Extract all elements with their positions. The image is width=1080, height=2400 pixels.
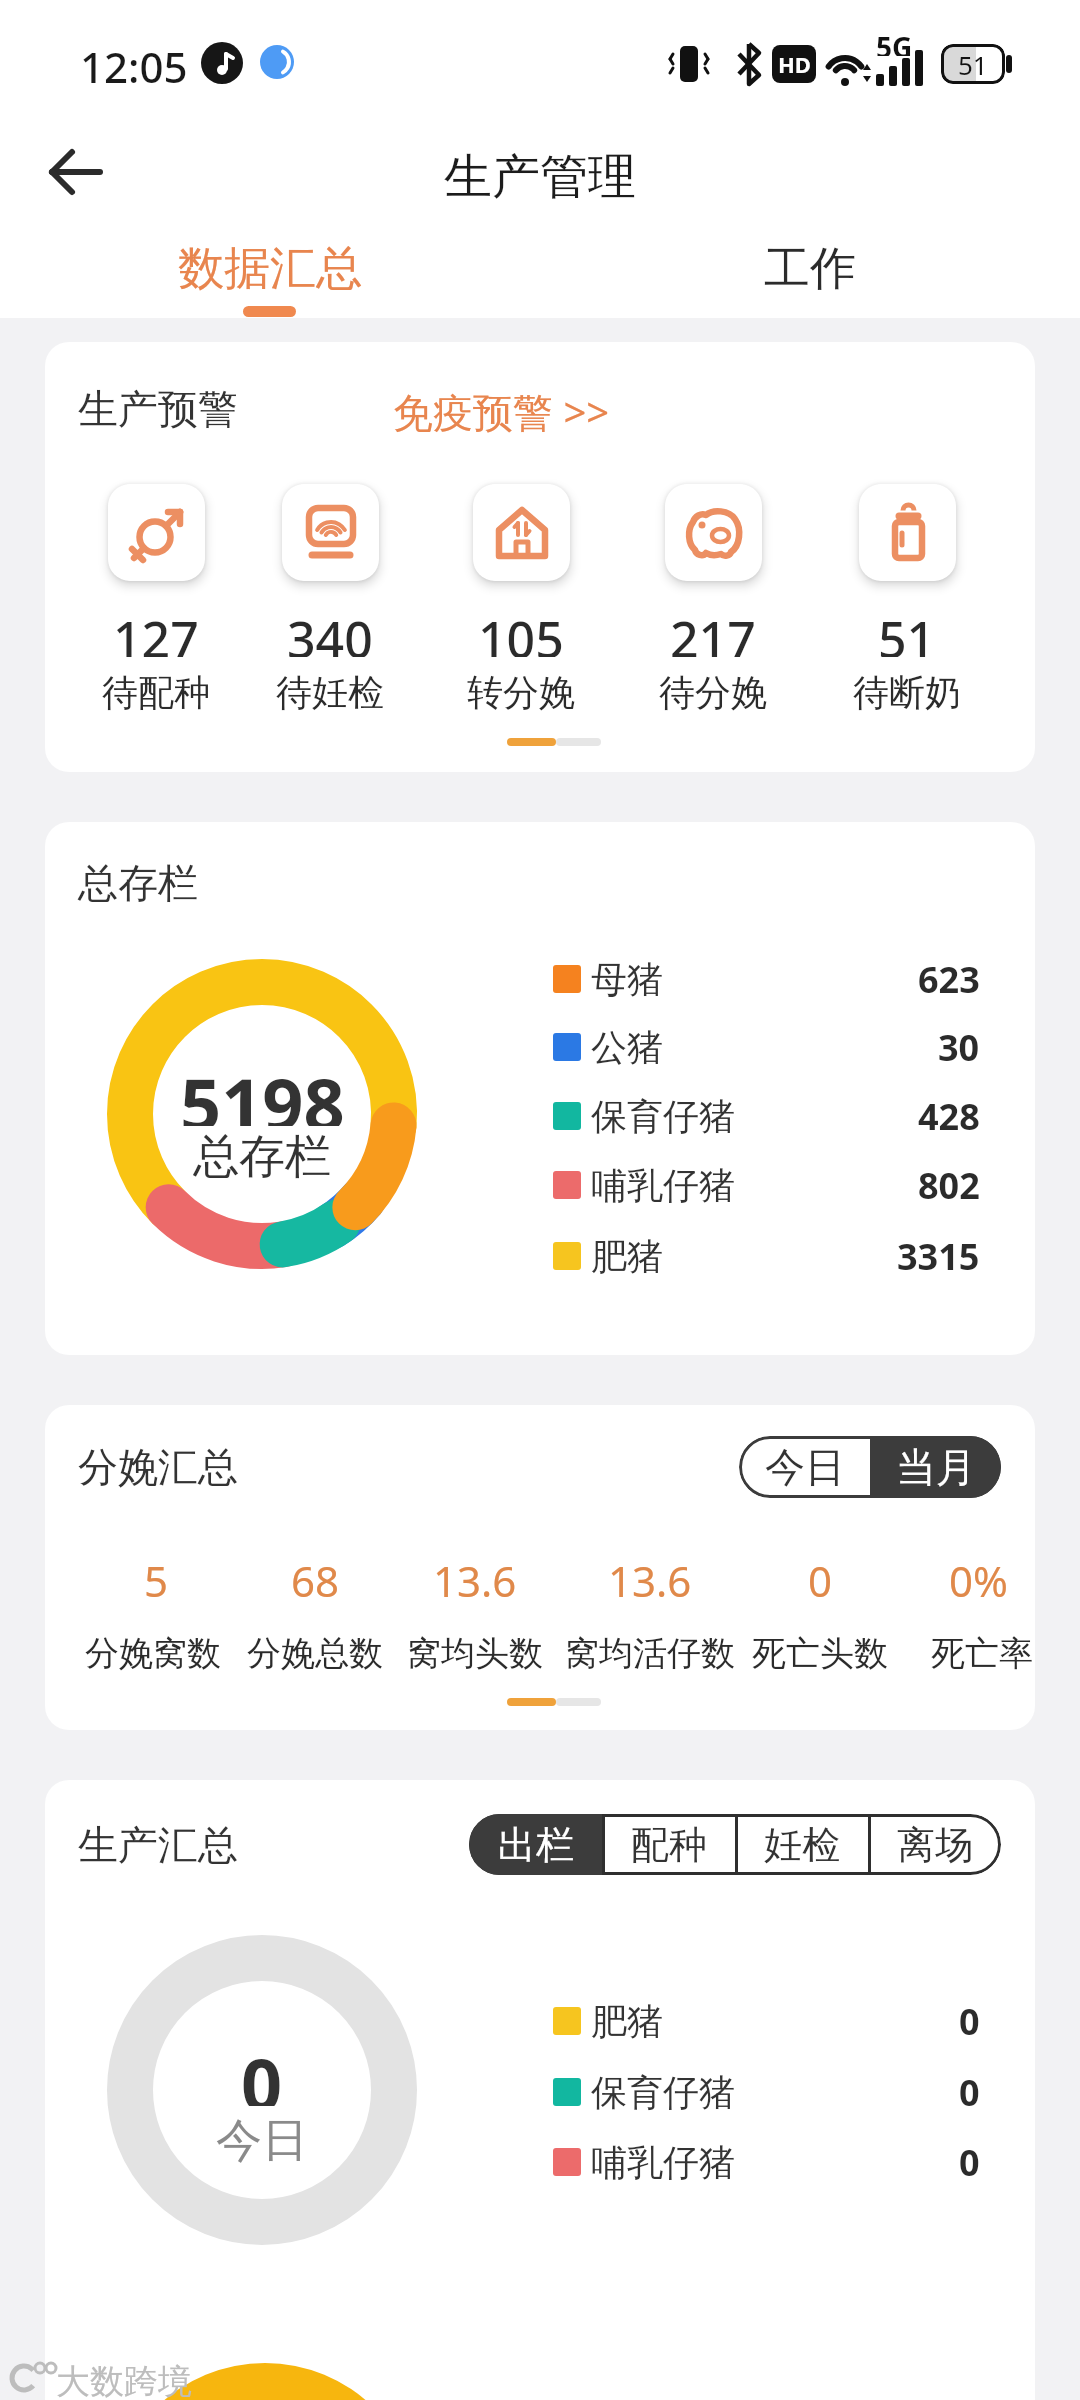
staticText: 妊检 [764,1821,840,1869]
staticText: 623 [918,955,980,1004]
staticText: 工作 [764,240,856,296]
staticText: 当月 [896,1442,976,1492]
staticText: 免疫预警 >> [393,384,610,434]
staticText: 0 [959,2068,980,2117]
staticText: 今日 [216,2112,308,2164]
button[interactable]: 妊检 [735,1814,868,1875]
staticText: 出栏 [498,1821,574,1869]
staticText: 总存栏 [78,858,198,908]
staticText: 51 [878,605,936,657]
staticText: 127 [113,605,199,657]
staticText: 生产汇总 [78,1820,238,1870]
staticText: 数据汇总 [178,240,362,296]
staticText: HD [778,49,811,79]
button[interactable]: 配种 [602,1814,735,1875]
button[interactable]: 工作 [700,240,920,296]
button[interactable]: 离场 [868,1814,1001,1875]
button[interactable] [38,138,110,206]
staticText: 待配种 [102,670,210,714]
staticText: 总存栏 [193,1128,331,1180]
staticText: 今日 [765,1442,845,1492]
staticText: 大数跨境 [56,2360,192,2400]
staticText: 3315 [897,1232,980,1281]
staticText: 保育仔猪 [591,1094,735,1139]
staticText: 340 [287,605,373,657]
staticText: 死亡率 [931,1632,1033,1675]
staticText: 217 [670,605,756,657]
staticText: 0 [808,1552,833,1604]
staticText: 离场 [897,1821,973,1869]
button[interactable] [859,484,956,581]
staticText: 转分娩 [467,670,575,714]
staticText: 0 [241,2034,283,2106]
staticText: 30 [938,1023,980,1072]
staticText: 哺乳仔猪 [591,2140,735,2185]
staticText: 0% [949,1552,1008,1604]
staticText: 肥猪 [591,1234,663,1279]
staticText: 0 [959,1997,980,2046]
staticText: 68 [291,1552,340,1604]
staticText: 哺乳仔猪 [591,1163,735,1208]
staticText: 12:05 [80,38,188,88]
staticText: 肥猪 [591,1999,663,2044]
staticText: 5198 [180,1054,345,1126]
staticText: 待分娩 [659,670,767,714]
button[interactable]: 免疫预警 >> [393,384,633,434]
staticText: 5 [144,1552,169,1604]
staticText: 51 [958,47,988,82]
staticText: 分娩汇总 [78,1442,238,1492]
staticText: 待妊检 [276,670,384,714]
staticText: 生产管理 [444,147,636,207]
staticText: 生产预警 [78,384,238,434]
staticText: 待断奶 [853,670,961,714]
staticText: 802 [918,1161,980,1210]
staticText: 窝均活仔数 [565,1632,735,1675]
button[interactable]: 今日 [739,1436,870,1498]
staticText: 13.6 [433,1552,517,1604]
staticText: 分娩窝数 [85,1632,221,1675]
staticText: 分娩总数 [247,1632,383,1675]
button[interactable]: 当月 [870,1436,1001,1498]
staticText: 窝均头数 [407,1632,543,1675]
staticText: 保育仔猪 [591,2070,735,2115]
staticText: 5G [876,28,913,56]
staticText: 105 [478,605,564,657]
staticText: 公猪 [591,1025,663,1070]
button[interactable] [473,484,570,581]
staticText: 配种 [631,1821,707,1869]
staticText: 428 [918,1092,980,1141]
staticText: 13.6 [608,1552,692,1604]
button[interactable] [108,484,205,581]
button[interactable]: 出栏 [469,1814,602,1875]
staticText: 母猪 [591,957,663,1002]
button[interactable] [282,484,379,581]
button[interactable] [665,484,762,581]
button[interactable]: 数据汇总 [160,240,380,296]
staticText: 死亡头数 [752,1632,888,1675]
staticText: 0 [959,2138,980,2187]
